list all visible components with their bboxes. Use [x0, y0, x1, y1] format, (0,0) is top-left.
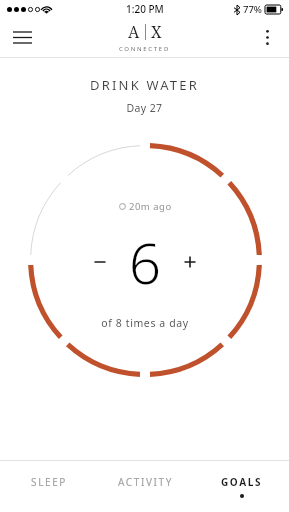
- staticText: X: [151, 21, 162, 43]
- staticText: GOALS: [221, 475, 262, 489]
- staticText: 77%: [243, 3, 262, 16]
- button[interactable]: SLEEP: [0, 461, 97, 512]
- button[interactable]: ACTIVITY: [97, 461, 193, 512]
- staticText: ACTIVITY: [118, 475, 173, 489]
- button[interactable]: Menu: [0, 18, 44, 56]
- button[interactable]: Increase: [173, 245, 207, 279]
- staticText: 1:20 PM: [126, 2, 164, 16]
- staticText: CONNECTED: [119, 45, 170, 53]
- button[interactable]: More options: [245, 18, 289, 56]
- staticText: A: [128, 21, 140, 43]
- staticText: SLEEP: [31, 475, 67, 489]
- staticText: of 8 times a day: [27, 316, 263, 330]
- button[interactable]: GOALS: [193, 461, 289, 512]
- staticText: 20m ago: [129, 200, 172, 213]
- staticText: DRINK WATER: [0, 76, 289, 94]
- staticText: 6: [129, 224, 161, 300]
- button[interactable]: Decrease: [83, 245, 117, 279]
- staticText: Day 27: [0, 101, 289, 115]
